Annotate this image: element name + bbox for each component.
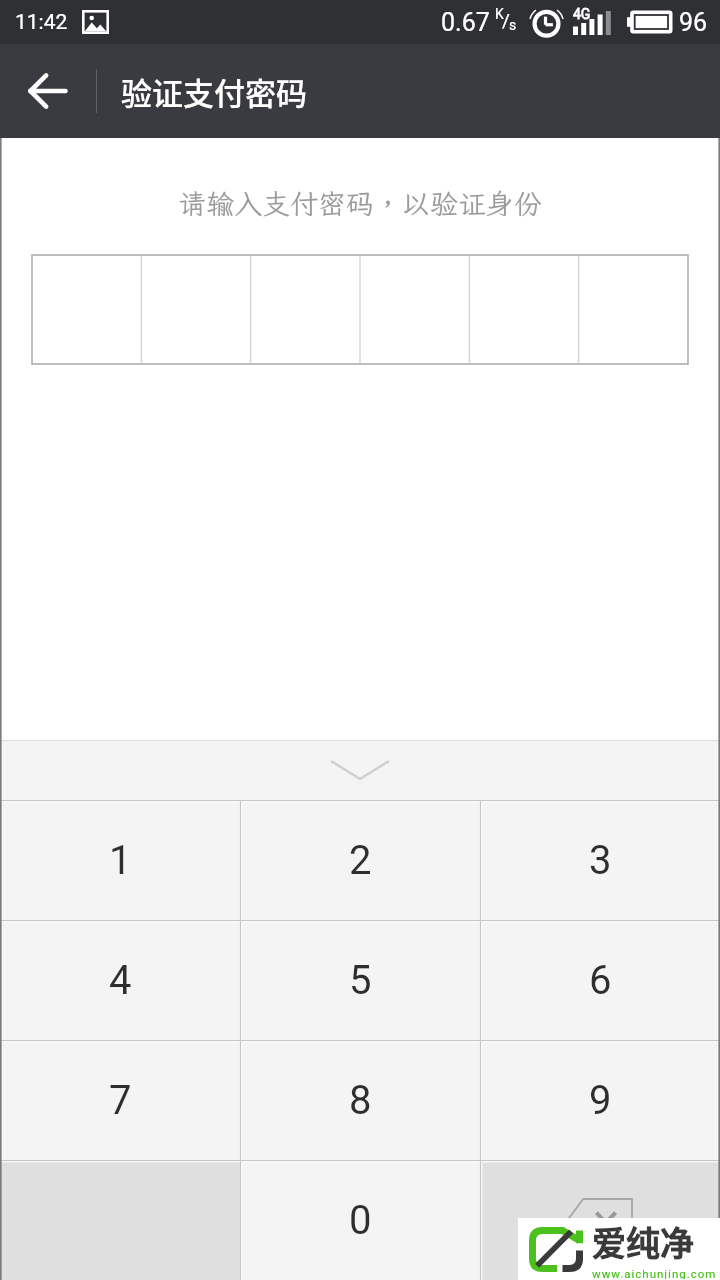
button[interactable]: 1 [0,800,240,920]
button[interactable]: Delete [480,1160,720,1280]
button[interactable]: Blank key [0,1160,240,1280]
staticText: 1 [109,837,132,884]
staticText: 96 [679,8,708,37]
staticText: / [502,9,510,31]
staticText: www.aichunjing.com [592,1267,717,1279]
button[interactable]: 8 [240,1040,480,1160]
button[interactable]: Hide keyboard [300,740,420,800]
button[interactable]: 5 [240,920,480,1040]
staticText: 6 [589,957,612,1004]
button[interactable]: Back [0,44,96,138]
staticText: 验证支付密码 [121,69,307,114]
staticText: 8 [349,1077,372,1124]
staticText: 爱纯净 [592,1217,694,1266]
staticText: 9 [589,1077,612,1124]
staticText: 2 [349,837,372,884]
button[interactable]: 4 [0,920,240,1040]
staticText: 5 [349,957,372,1004]
button[interactable]: 7 [0,1040,240,1160]
button[interactable]: 2 [240,800,480,920]
staticText: 3 [589,837,612,884]
staticText: 请输入支付密码，以验证身份 [0,185,720,222]
staticText: s [509,17,517,33]
button[interactable]: 9 [480,1040,720,1160]
button[interactable]: 0 [240,1160,480,1280]
button[interactable]: Payment password input [32,255,688,364]
staticText: 11:42 [15,10,68,35]
button[interactable]: 3 [480,800,720,920]
staticText: 0 [349,1197,372,1244]
button[interactable]: 6 [480,920,720,1040]
staticText: 4G [573,6,591,22]
staticText: 7 [109,1077,132,1124]
staticText: K [495,6,504,22]
staticText: 4 [109,957,132,1004]
staticText: 0.67 [441,8,490,37]
